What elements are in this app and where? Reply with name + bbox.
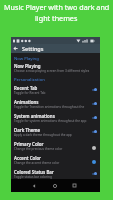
button[interactable]: Primary Color (11, 139, 100, 153)
button[interactable]: Toggle Animations (90, 99, 98, 108)
staticText: Music Player with two dark and (4, 2, 110, 12)
staticText: Toggle status bar coloring (14, 175, 52, 179)
staticText: Apply a dark theme throughout the app (14, 133, 72, 137)
staticText: Animations (14, 99, 39, 105)
staticText: Recent Tab (14, 85, 38, 91)
button[interactable]: Colored Status Bar (11, 167, 100, 181)
staticText: Choose a now-playing screen from 3 diffe… (14, 69, 90, 73)
button[interactable]: Dark Theme (11, 125, 100, 139)
button[interactable]: Toggle System animations (90, 113, 98, 122)
staticText: Change the accent theme color (14, 161, 60, 165)
button[interactable]: Back (11, 44, 20, 53)
staticText: Change the previous theme color (14, 147, 63, 151)
staticText: Now Playing (14, 56, 39, 61)
button[interactable]: Animations (11, 97, 100, 111)
button[interactable]: Choose Primary Color (90, 143, 98, 152)
button[interactable]: Recent Tab (11, 83, 100, 97)
button[interactable]: Now Playing (11, 61, 100, 75)
staticText: Dark Theme (14, 127, 41, 133)
staticText: Toggle for Recent Tab (14, 91, 46, 95)
button[interactable]: Toggle Dark Theme (90, 127, 98, 136)
button[interactable]: System animations (11, 111, 100, 125)
staticText: System animations (14, 113, 55, 119)
staticText: Settings (22, 45, 44, 52)
button[interactable]: Accent Color (11, 153, 100, 167)
staticText: Colored Status Bar (14, 169, 54, 175)
button[interactable]: Choose Accent Color (90, 157, 98, 166)
staticText: Now Playing (14, 63, 41, 69)
staticText: Personalization (14, 77, 45, 83)
staticText: Accent Color (14, 155, 42, 161)
staticText: Primary Color (14, 141, 44, 147)
button[interactable]: Home (49, 180, 60, 191)
staticText: Toggle for Transition animations through… (14, 105, 90, 109)
staticText: light themes (35, 13, 78, 23)
button[interactable]: Recents (69, 180, 80, 191)
button[interactable]: Toggle Recent Tab (90, 85, 98, 94)
staticText: Toggle for system animations throughout … (14, 119, 87, 123)
button[interactable]: Back (28, 180, 39, 191)
button[interactable]: Toggle Colored Status Bar (90, 169, 98, 178)
